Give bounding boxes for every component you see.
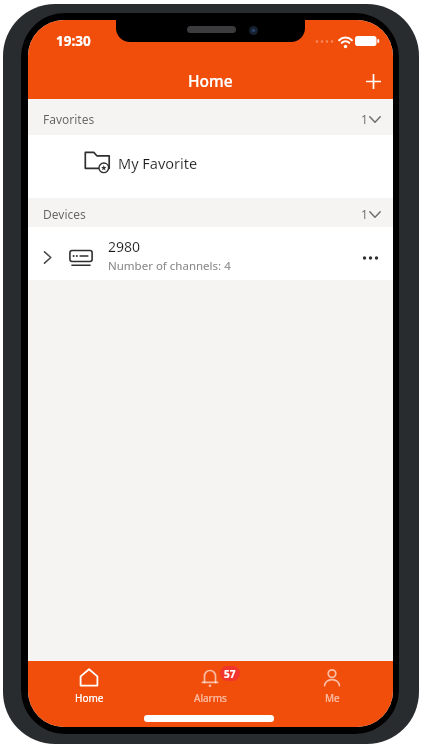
staticText: Devices [43,206,86,222]
staticText: 1 [361,111,368,127]
staticText: Number of channels: 4 [108,258,231,274]
button[interactable]: Me [292,667,372,713]
button[interactable]: 2980 [28,227,393,280]
button[interactable]: Alarms [170,667,250,713]
button[interactable] [358,251,383,263]
staticText: Alarms [194,691,227,705]
staticText: 19:30 [56,32,91,50]
button[interactable]: Home [49,667,129,713]
staticText: Home [75,691,104,705]
staticText: 1 [361,206,368,222]
staticText: Favorites [43,111,95,127]
staticText: My Favorite [118,153,198,173]
button[interactable] [358,66,388,96]
staticText: Home [188,70,233,90]
staticText: 57 [224,667,236,681]
staticText: 2980 [108,237,141,256]
staticText: Me [325,691,340,705]
button[interactable]: My Favorite [28,135,393,198]
